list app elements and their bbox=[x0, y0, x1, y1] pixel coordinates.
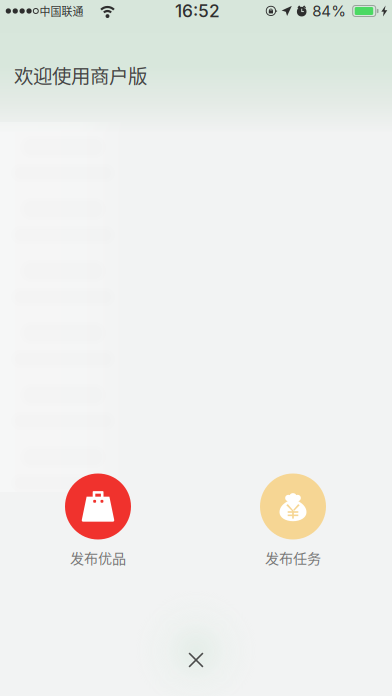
staticText: 发布优品 bbox=[70, 547, 126, 568]
staticText: 欢迎使用商户版 bbox=[14, 61, 147, 89]
button[interactable]: 发布任务 bbox=[238, 472, 348, 567]
staticText: 16:52 bbox=[175, 0, 220, 21]
button[interactable]: 发布优品 bbox=[43, 472, 153, 567]
staticText: 发布任务 bbox=[265, 547, 321, 568]
button[interactable]: Close bbox=[171, 635, 221, 685]
staticText: 中国联通 bbox=[39, 3, 83, 19]
staticText: 84% bbox=[312, 2, 346, 20]
